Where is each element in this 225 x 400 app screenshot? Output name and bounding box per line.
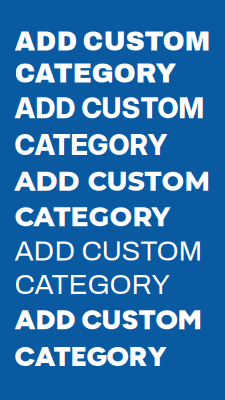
- staticText: ADD CUSTOM: [14, 236, 202, 266]
- staticText: CATEGORY: [14, 339, 166, 373]
- staticText: CATEGORY: [14, 200, 169, 233]
- staticText: ADD CUSTOM: [14, 91, 203, 125]
- staticText: ADD CUSTOM: [14, 303, 201, 336]
- staticText: CATEGORY: [14, 128, 167, 162]
- staticText: CATEGORY: [14, 59, 176, 88]
- staticText: CATEGORY: [14, 269, 169, 300]
- staticText: ADD CUSTOM: [14, 165, 209, 197]
- staticText: ADD CUSTOM: [14, 27, 210, 56]
